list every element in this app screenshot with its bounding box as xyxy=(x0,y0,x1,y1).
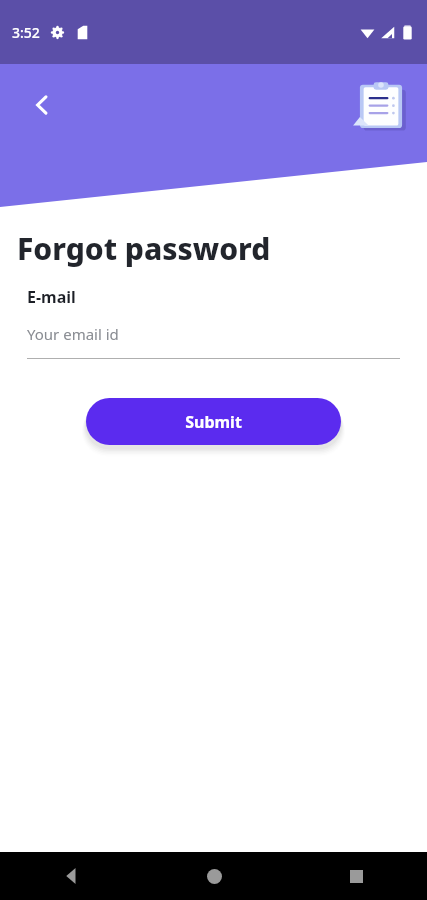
staticText: 3:52 xyxy=(12,23,40,42)
button[interactable]: Back xyxy=(0,852,143,900)
button[interactable]: Home xyxy=(143,852,285,900)
button[interactable]: Your email id xyxy=(27,324,400,359)
staticText: Submit xyxy=(185,411,242,433)
button[interactable]: Submit xyxy=(86,398,341,445)
staticText: E-mail xyxy=(27,286,76,308)
button[interactable]: Back xyxy=(18,81,66,129)
staticText: Forgot password xyxy=(17,228,271,269)
staticText: Your email id xyxy=(27,324,119,344)
button[interactable]: Recent apps xyxy=(285,852,427,900)
